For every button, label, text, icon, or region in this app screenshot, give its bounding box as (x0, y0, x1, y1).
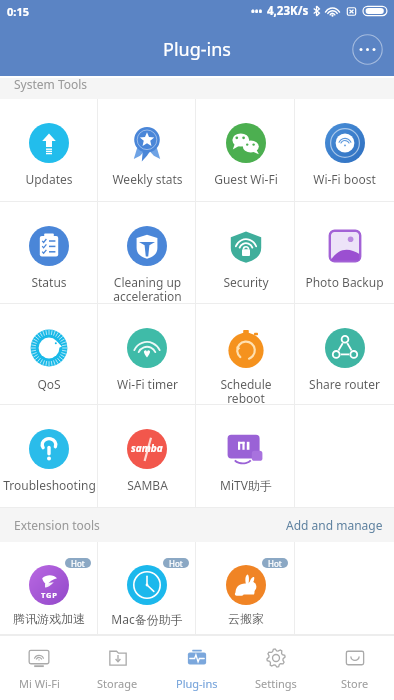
staticText: Hot (71, 558, 85, 568)
button[interactable]: Status (0, 202, 98, 303)
button[interactable]: Mac备份助手 (98, 542, 196, 634)
button[interactable]: Updates (0, 99, 98, 201)
staticText: QoS (37, 376, 61, 392)
staticText: 0:15 (7, 4, 29, 19)
staticText: Updates (25, 171, 73, 187)
staticText: Mi Wi-Fi (19, 676, 60, 691)
staticText: Schedule reboot (220, 376, 272, 407)
staticText: Add and manage (286, 517, 383, 533)
staticText: Wi-Fi timer (117, 376, 178, 392)
button[interactable]: Photo Backup (295, 202, 394, 303)
button[interactable]: Wi-Fi timer (98, 304, 196, 404)
button[interactable]: Settings (236, 636, 315, 700)
staticText: Status (31, 274, 67, 290)
staticText: Extension tools (14, 517, 100, 533)
button[interactable]: Wi-Fi boost (295, 99, 394, 201)
staticText: Guest Wi-Fi (214, 171, 278, 187)
button[interactable]: Plug-ins (157, 636, 236, 700)
staticText: 云搬家 (228, 611, 264, 626)
staticText: Settings (255, 676, 297, 691)
button[interactable]: Troubleshooting (0, 405, 98, 507)
staticText: Photo Backup (305, 274, 384, 290)
staticText: System Tools (14, 76, 88, 92)
button[interactable]: Schedule reboot (196, 304, 295, 404)
staticText: Storage (97, 676, 138, 691)
button[interactable]: MiTV助手 (196, 405, 295, 507)
staticText: Share router (309, 376, 380, 392)
staticText: Hot (268, 558, 282, 568)
button[interactable]: QoS (0, 304, 98, 404)
staticText: Store (341, 676, 369, 691)
button[interactable]: Storage (78, 636, 157, 700)
staticText: ••• (251, 4, 263, 18)
staticText: Plug-ins (163, 37, 231, 62)
staticText: Security (223, 274, 269, 290)
button[interactable]: Mi Wi-Fi (0, 636, 78, 700)
button[interactable]: Add and manage (272, 508, 394, 542)
button[interactable]: 云搬家 (196, 542, 295, 634)
button[interactable]: Weekly stats (98, 99, 196, 201)
button[interactable]: Store (315, 636, 394, 700)
button[interactable]: Guest Wi-Fi (196, 99, 295, 201)
staticText: 腾讯游戏加速 (13, 611, 85, 626)
button[interactable]: TGP (0, 542, 98, 634)
staticText: Weekly stats (112, 171, 183, 187)
staticText: Mac备份助手 (111, 611, 183, 627)
staticText: Cleaning up acceleration (113, 274, 182, 305)
button[interactable]: samba (98, 405, 196, 507)
staticText: SAMBA (127, 477, 168, 493)
staticText: Wi-Fi boost (313, 171, 376, 187)
staticText: MiTV助手 (220, 477, 272, 493)
button[interactable]: Share router (295, 304, 394, 404)
button[interactable]: Cleaning up acceleration (98, 202, 196, 303)
button[interactable]: Security (196, 202, 295, 303)
staticText: Plug-ins (176, 676, 218, 691)
button[interactable]: More options (352, 34, 383, 65)
staticText: 4,23K/s (267, 3, 309, 19)
staticText: Troubleshooting (3, 477, 96, 493)
staticText: Hot (169, 558, 183, 568)
staticText: TGP (41, 590, 58, 600)
staticText: samba (131, 441, 163, 455)
